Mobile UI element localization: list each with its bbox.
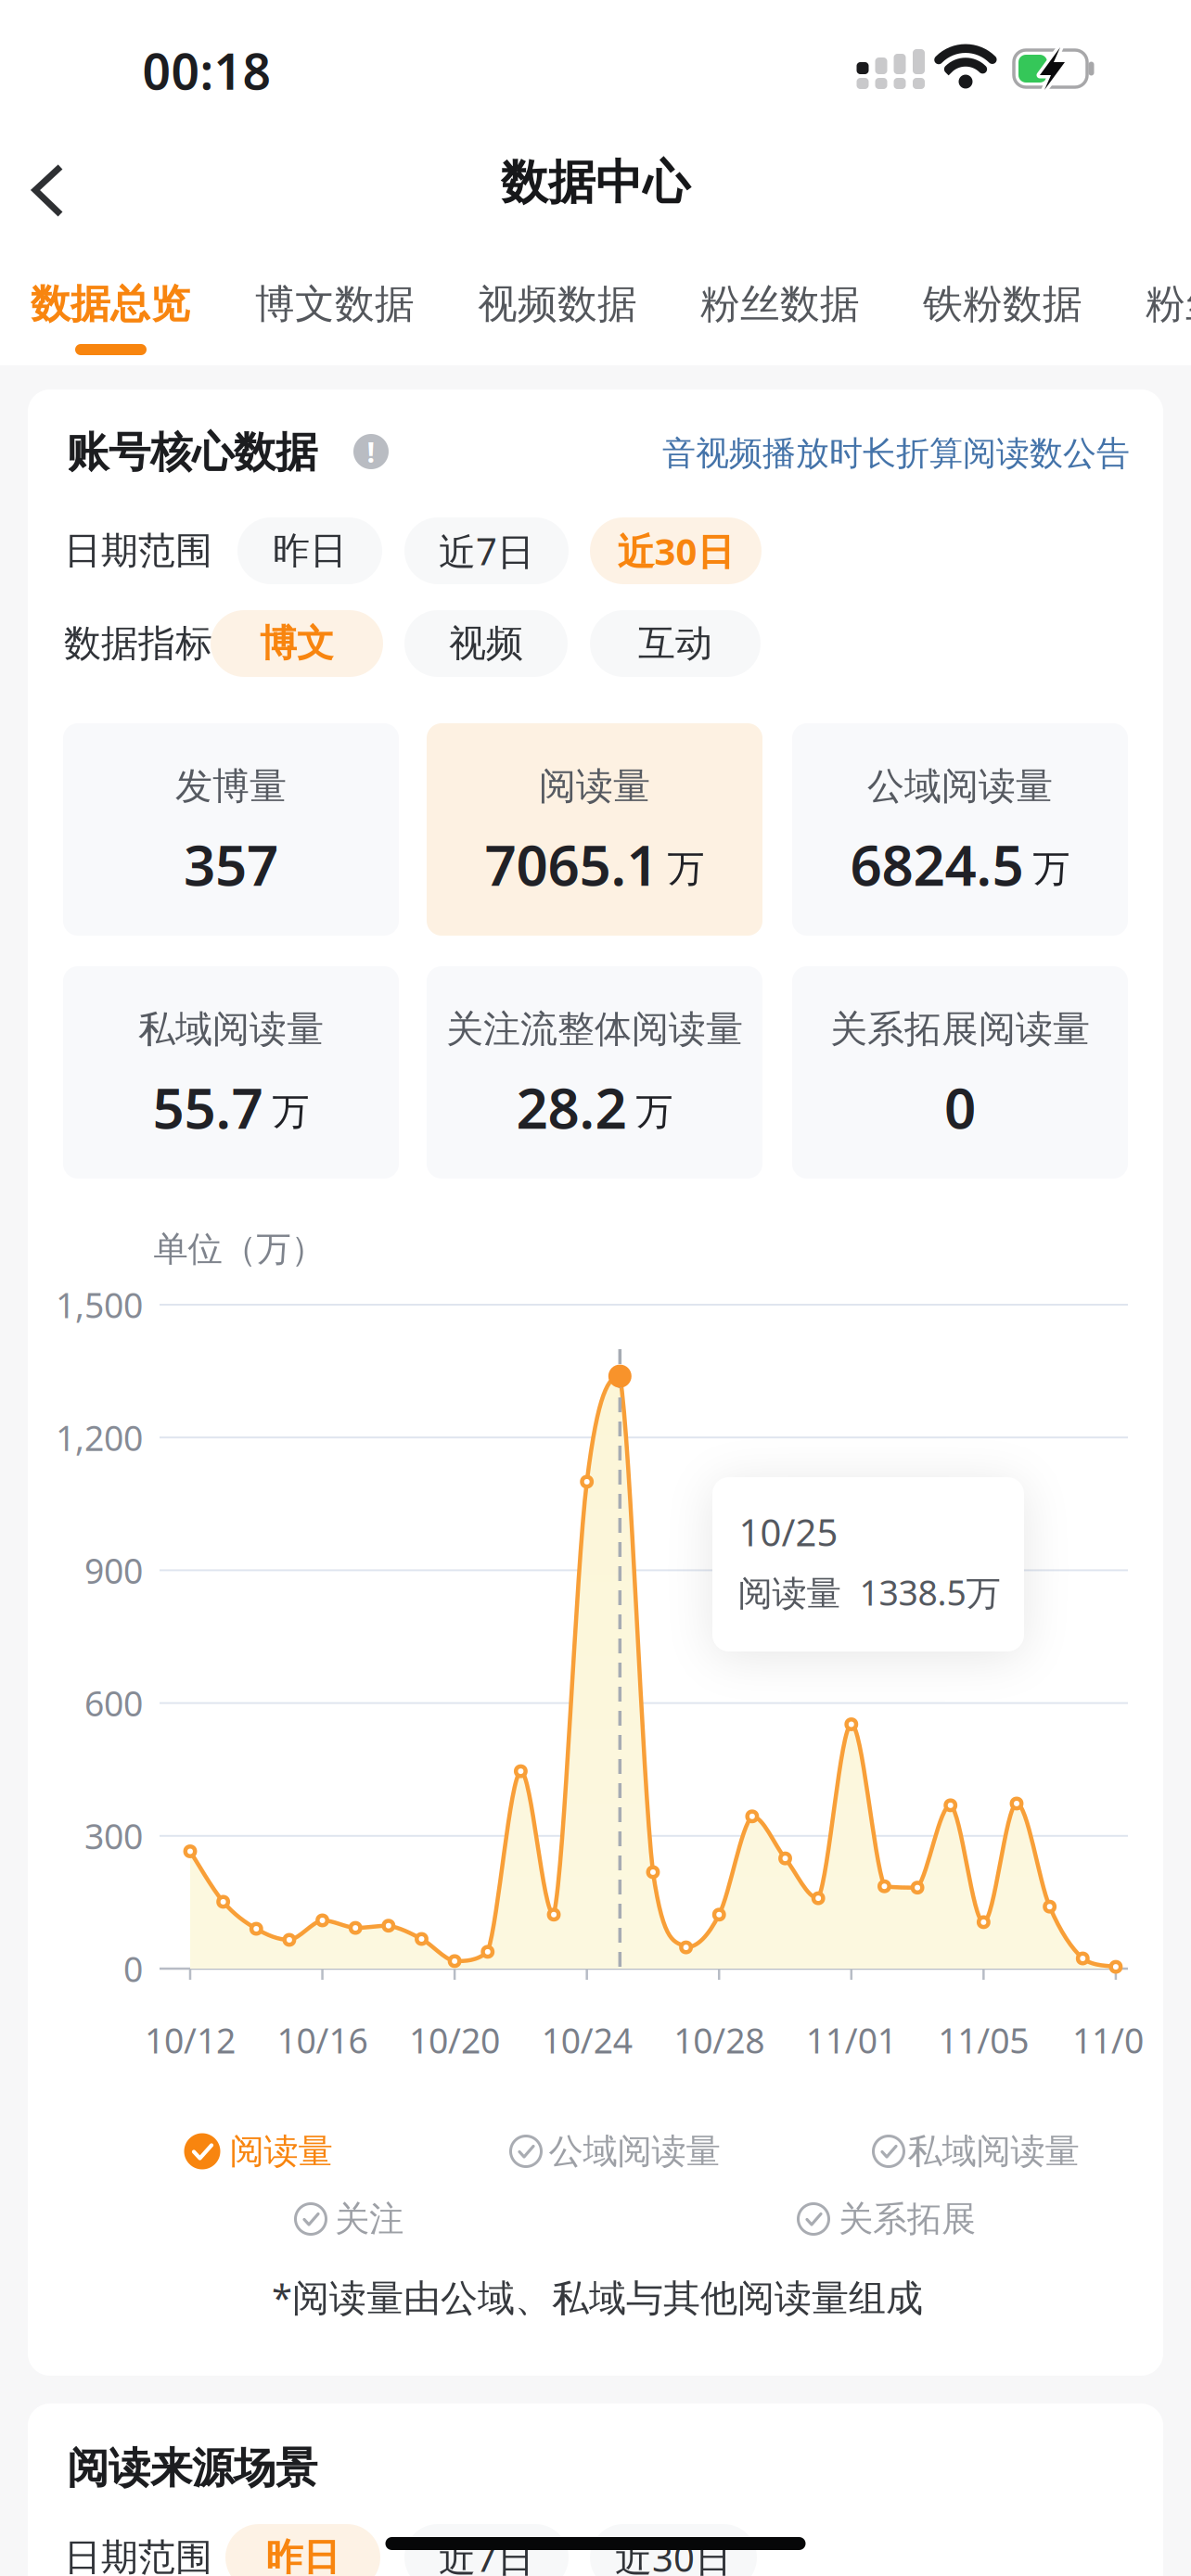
staticText: 00:18 bbox=[142, 38, 271, 103]
staticText: 10/24 bbox=[541, 2017, 632, 2063]
button[interactable]: 发博量 bbox=[63, 723, 399, 936]
staticText: 昨日 bbox=[273, 528, 347, 574]
staticText: 数据指标 bbox=[64, 621, 212, 666]
staticText: 粉丝数据 bbox=[700, 280, 860, 328]
staticText: 阅读量 bbox=[230, 2130, 333, 2173]
staticText: 阅读来源场景 bbox=[67, 2443, 317, 2494]
staticText: 私域阅读量 bbox=[908, 2130, 1079, 2173]
button[interactable]: 博文 bbox=[211, 610, 383, 677]
staticText: 28.2 bbox=[516, 1070, 627, 1144]
staticText: 近7日 bbox=[439, 526, 534, 575]
staticText: 6824.5 bbox=[850, 827, 1024, 901]
staticText: 1,200 bbox=[56, 1414, 143, 1460]
staticText: 日期范围 bbox=[64, 528, 212, 574]
button[interactable] bbox=[873, 2136, 904, 2167]
staticText: 账号核心数据 bbox=[67, 427, 317, 478]
staticText: 900 bbox=[84, 1547, 143, 1593]
staticText: 0 bbox=[123, 1946, 143, 1992]
button[interactable]: 近30日 bbox=[590, 2524, 757, 2576]
staticText: 近7日 bbox=[439, 2533, 534, 2576]
staticText: 昨日 bbox=[266, 2535, 340, 2576]
staticText: 600 bbox=[84, 1680, 143, 1726]
button[interactable] bbox=[798, 2204, 829, 2234]
staticText: 10/16 bbox=[277, 2017, 368, 2063]
staticText: 10/25 bbox=[739, 1507, 838, 1556]
staticText: 10/28 bbox=[674, 2017, 765, 2063]
staticText: 互动 bbox=[638, 621, 712, 666]
button[interactable]: 昨日 bbox=[225, 2524, 380, 2576]
staticText: 万 bbox=[636, 1089, 673, 1135]
button[interactable]: 粉丝数据 bbox=[1146, 280, 1191, 328]
staticText: 万 bbox=[667, 846, 704, 892]
button[interactable] bbox=[32, 163, 65, 219]
button[interactable]: 铁粉数据 bbox=[923, 280, 1082, 328]
staticText: 关注流整体阅读量 bbox=[446, 1006, 743, 1052]
staticText: 0 bbox=[944, 1070, 976, 1144]
staticText: 视频数据 bbox=[478, 280, 637, 328]
staticText: 公域阅读量 bbox=[549, 2130, 720, 2173]
button[interactable]: 关系拓展阅读量 bbox=[792, 966, 1128, 1179]
button[interactable]: 昨日 bbox=[237, 517, 382, 584]
staticText: 10/20 bbox=[409, 2017, 500, 2063]
button[interactable]: 阅读量 bbox=[427, 723, 762, 936]
staticText: 音视频播放时长折算阅读数公告 bbox=[662, 433, 1130, 474]
button[interactable]: 数据总览 bbox=[31, 280, 190, 328]
staticText: 7065.1 bbox=[485, 827, 658, 901]
staticText: 单位（万） bbox=[154, 1228, 325, 1270]
staticText: 55.7 bbox=[153, 1070, 263, 1144]
button[interactable]: 关注流整体阅读量 bbox=[427, 966, 762, 1179]
button[interactable]: 近7日 bbox=[404, 517, 569, 584]
staticText: 发博量 bbox=[175, 764, 287, 809]
staticText: 1,500 bbox=[56, 1282, 143, 1328]
staticText: 博文数据 bbox=[255, 280, 415, 328]
staticText: 铁粉数据 bbox=[923, 280, 1082, 328]
button[interactable]: 博文数据 bbox=[255, 280, 415, 328]
button[interactable] bbox=[511, 2136, 541, 2167]
staticText: 11/01 bbox=[806, 2017, 897, 2063]
staticText: 私域阅读量 bbox=[138, 1006, 324, 1052]
staticText: 数据总览 bbox=[31, 280, 190, 328]
staticText: 10/12 bbox=[145, 2017, 236, 2063]
button[interactable] bbox=[295, 2204, 326, 2234]
staticText: 11/09 bbox=[1072, 2017, 1163, 2063]
button[interactable]: 近7日 bbox=[404, 2524, 569, 2576]
staticText: 近30日 bbox=[617, 526, 734, 575]
staticText: 万 bbox=[272, 1089, 309, 1135]
staticText: 粉丝数据 bbox=[1146, 280, 1191, 328]
staticText: *阅读量由公域、私域与其他阅读量组成 bbox=[272, 2272, 923, 2321]
button[interactable]: ! bbox=[353, 434, 389, 469]
staticText: 视频 bbox=[449, 621, 523, 666]
staticText: 关系拓展 bbox=[839, 2198, 976, 2240]
button[interactable]: 公域阅读量 bbox=[792, 723, 1128, 936]
staticText: 博文 bbox=[260, 621, 334, 666]
staticText: 357 bbox=[184, 827, 278, 901]
staticText: 阅读量 1338.5万 bbox=[738, 1569, 1000, 1615]
staticText: 万 bbox=[1033, 846, 1070, 892]
staticText: 日期范围 bbox=[64, 2535, 212, 2576]
staticText: 关系拓展阅读量 bbox=[830, 1006, 1090, 1052]
staticText: 阅读量 bbox=[539, 764, 650, 809]
staticText: 公域阅读量 bbox=[867, 764, 1053, 809]
button[interactable] bbox=[184, 2133, 220, 2169]
button[interactable]: 音视频播放时长折算阅读数公告 bbox=[662, 433, 1130, 474]
staticText: ! bbox=[367, 433, 375, 470]
staticText: 关注 bbox=[335, 2198, 403, 2240]
button[interactable]: 视频 bbox=[404, 610, 568, 677]
button[interactable]: 互动 bbox=[590, 610, 761, 677]
staticText: 数据中心 bbox=[501, 154, 690, 212]
button[interactable]: 视频数据 bbox=[478, 280, 637, 328]
button[interactable]: 私域阅读量 bbox=[63, 966, 399, 1179]
button[interactable]: 粉丝数据 bbox=[700, 280, 860, 328]
staticText: 300 bbox=[84, 1813, 143, 1859]
staticText: 11/05 bbox=[938, 2017, 1029, 2063]
button[interactable]: 近30日 bbox=[590, 517, 762, 584]
staticText: 近30日 bbox=[615, 2533, 732, 2576]
